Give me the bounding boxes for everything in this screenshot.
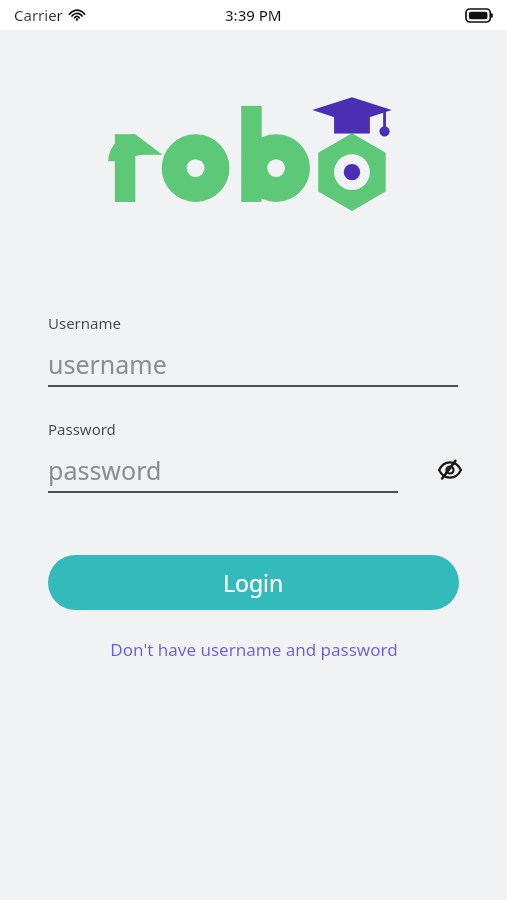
button[interactable]: Don't have username and password [98,632,410,667]
staticText: Don't have username and password [110,638,398,661]
button[interactable]: Login [48,555,459,610]
staticText: Password [48,419,116,439]
staticText: password [48,453,162,487]
staticText: username [48,347,167,381]
button[interactable]: password [0,447,398,493]
staticText: 3:39 PM [225,5,282,25]
staticText: Carrier [14,5,63,25]
staticText: Login [223,567,284,598]
staticText: Username [48,313,121,333]
button[interactable]: Show password [433,453,467,487]
button[interactable]: username [0,341,507,387]
